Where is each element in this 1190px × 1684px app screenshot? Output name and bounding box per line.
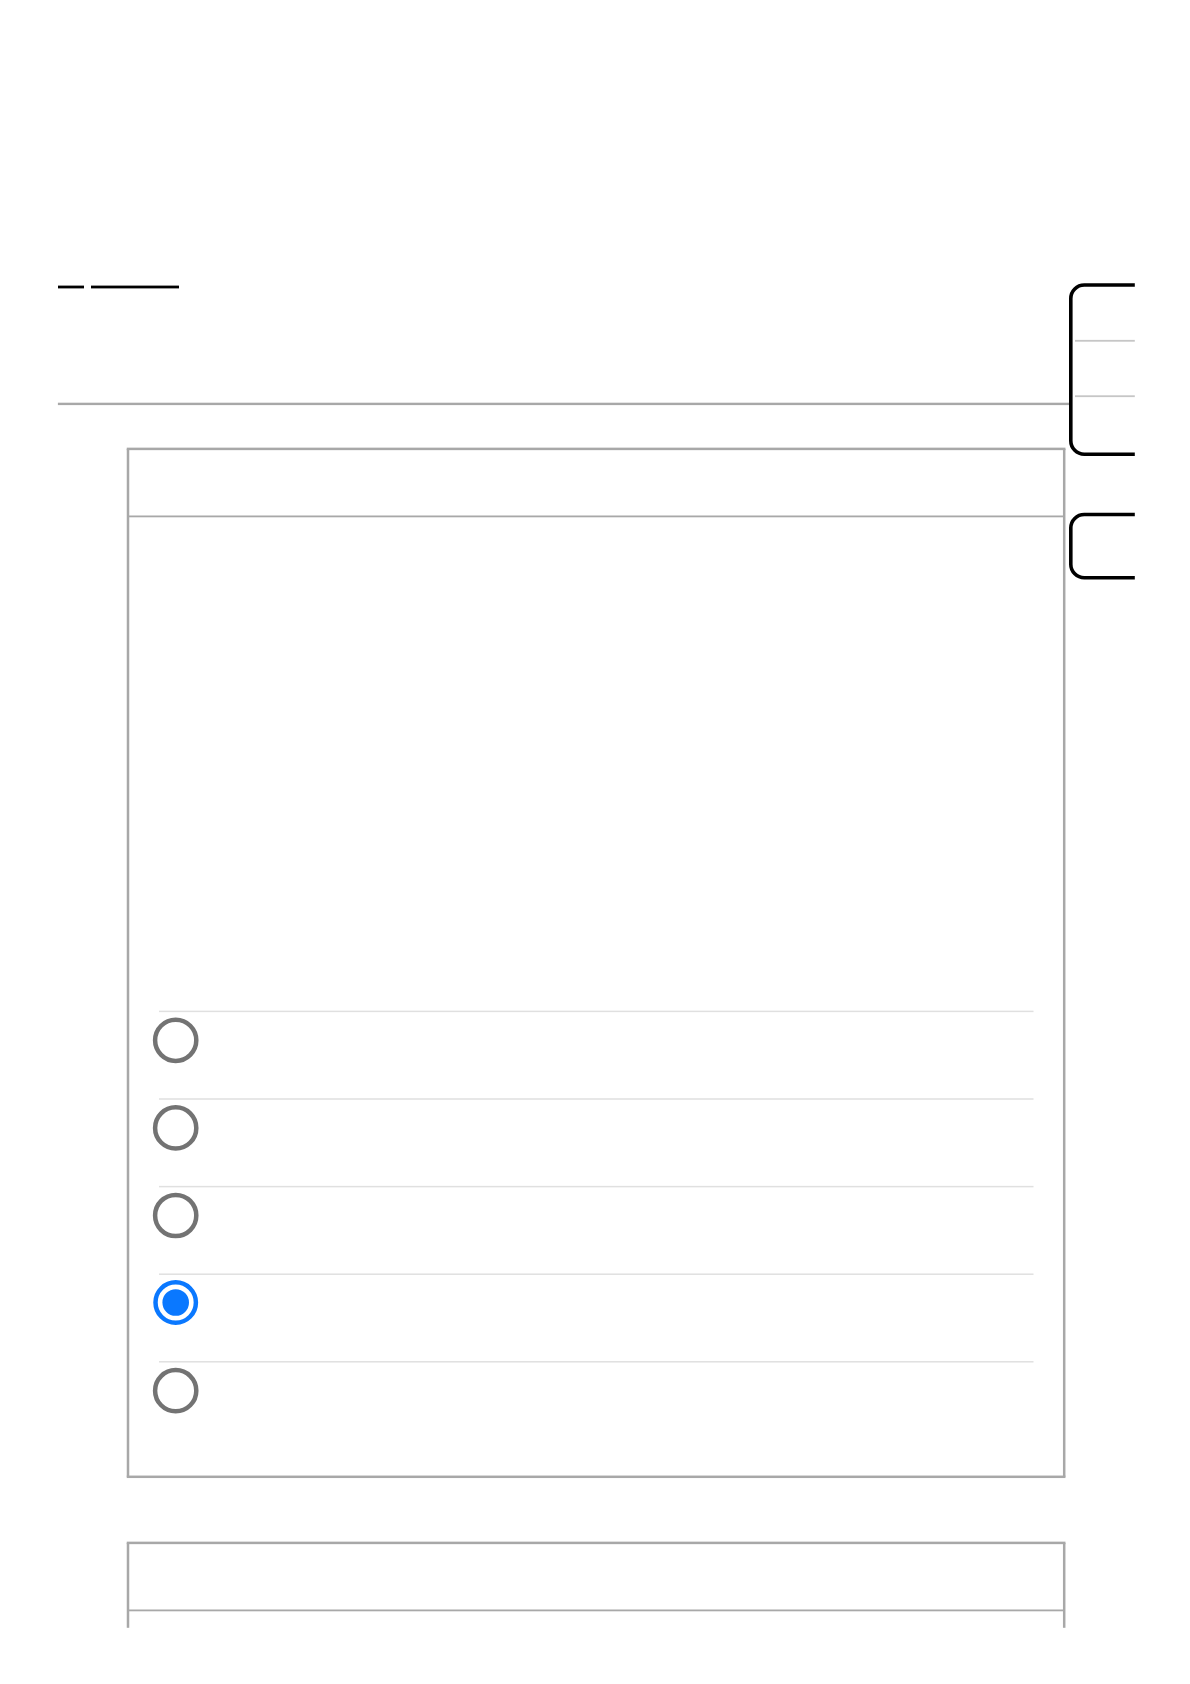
button[interactable]: Option 4	[159, 1274, 1034, 1361]
button[interactable]: Option 1	[159, 1011, 1034, 1099]
button[interactable]: Option 2	[159, 1099, 1034, 1186]
button[interactable]: More actions	[1069, 513, 1135, 579]
button[interactable]: Option 5	[159, 1361, 1034, 1418]
button[interactable]: Options menu	[1069, 283, 1135, 454]
button[interactable]: Option 3	[159, 1186, 1034, 1274]
button[interactable]: Question header	[128, 449, 1065, 517]
button[interactable]: Form title	[57, 272, 179, 302]
button[interactable]: Next question	[128, 1543, 1065, 1611]
